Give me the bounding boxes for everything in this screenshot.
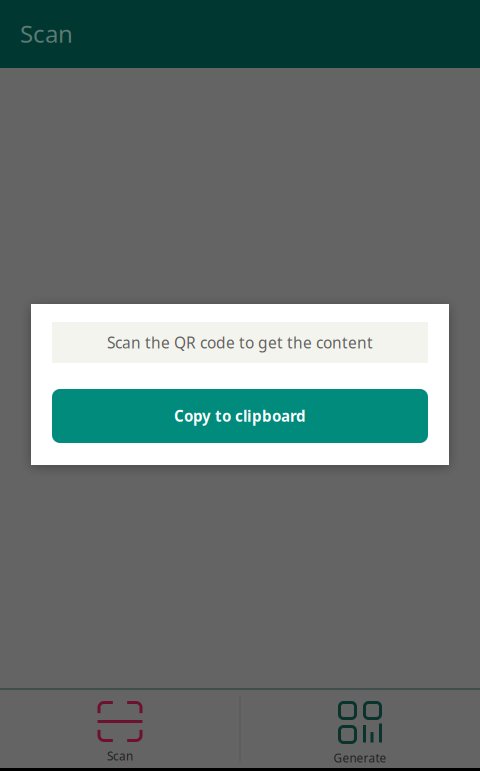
staticText: Scan: [107, 748, 133, 764]
button[interactable]: Scan: [0, 690, 240, 768]
button[interactable]: Copy to clipboard: [52, 389, 428, 443]
button[interactable]: Generate: [240, 690, 480, 768]
staticText: Scan: [20, 17, 73, 50]
staticText: Copy to clipboard: [174, 406, 306, 426]
staticText: Generate: [333, 750, 386, 766]
staticText: Scan the QR code to get the content: [107, 332, 373, 353]
